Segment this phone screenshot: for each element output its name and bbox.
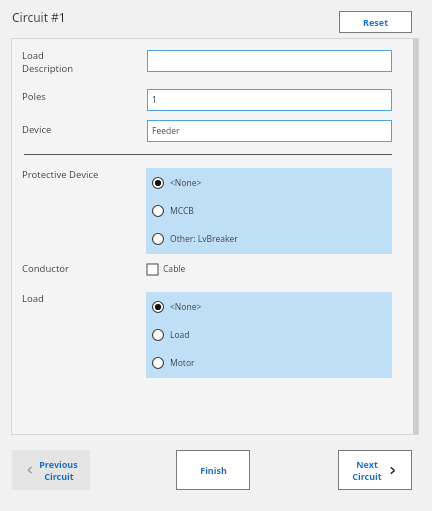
button[interactable]: Other: LvBreaker — [152, 230, 238, 248]
staticText: Reset — [363, 16, 389, 28]
staticText: Device — [22, 123, 52, 136]
button[interactable]: Cable — [147, 261, 186, 277]
staticText: 1 — [152, 94, 157, 106]
staticText: Feeder — [152, 125, 180, 137]
button[interactable]: MCCB — [152, 202, 194, 220]
staticText: Circuit — [352, 470, 382, 482]
staticText: Next — [356, 458, 378, 470]
button[interactable]: Next — [338, 450, 412, 490]
staticText: Circuit — [44, 470, 74, 482]
staticText: Previous — [39, 458, 78, 470]
staticText: MCCB — [170, 205, 194, 217]
staticText: Poles — [22, 90, 46, 103]
staticText: Load — [170, 329, 190, 341]
staticText: Conductor — [22, 262, 69, 275]
button[interactable]: 1 — [147, 89, 392, 111]
staticText: Protective Device — [22, 168, 99, 181]
button[interactable]: Reset — [339, 11, 412, 33]
button[interactable]: Finish — [176, 450, 250, 490]
button[interactable]: Feeder — [147, 120, 392, 142]
staticText: Load — [22, 292, 44, 305]
staticText: <None> — [170, 177, 202, 189]
staticText: <None> — [170, 301, 202, 313]
other: Next — [387, 465, 398, 476]
button[interactable]: <None> — [152, 174, 202, 192]
button[interactable]: <None> — [152, 298, 202, 316]
staticText: Finish — [200, 464, 227, 476]
staticText: Other: LvBreaker — [170, 233, 238, 245]
staticText: Cable — [163, 263, 186, 275]
staticText: Load Description — [22, 49, 74, 75]
button[interactable]: Previous — [12, 450, 90, 490]
button[interactable]: Motor — [152, 354, 195, 372]
button[interactable]: Load — [152, 326, 190, 344]
staticText: Circuit #1 — [12, 9, 66, 25]
staticText: Motor — [170, 357, 195, 369]
other: Previous — [25, 465, 35, 475]
button[interactable] — [147, 50, 392, 72]
